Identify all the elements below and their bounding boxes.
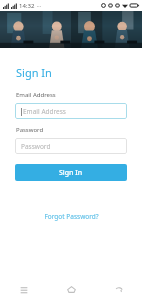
- button[interactable]: Recent apps: [0, 279, 48, 300]
- button[interactable]: Password: [15, 138, 127, 154]
- staticText: Email Address: [16, 91, 56, 99]
- button[interactable]: Home: [48, 279, 95, 300]
- staticText: ···: [37, 3, 42, 10]
- button[interactable]: Forgot Password?: [38, 210, 105, 223]
- staticText: Sign In: [59, 168, 83, 178]
- staticText: 14:32: [19, 2, 35, 10]
- staticText: Forgot Password?: [44, 212, 99, 221]
- staticText: Password: [16, 126, 44, 134]
- staticText: Sign In: [16, 65, 52, 80]
- button[interactable]: Back: [95, 279, 142, 300]
- button[interactable]: Sign In: [15, 164, 127, 181]
- staticText: Email Address: [23, 107, 66, 116]
- staticText: Password: [21, 142, 51, 151]
- button[interactable]: Email Address: [15, 103, 127, 119]
